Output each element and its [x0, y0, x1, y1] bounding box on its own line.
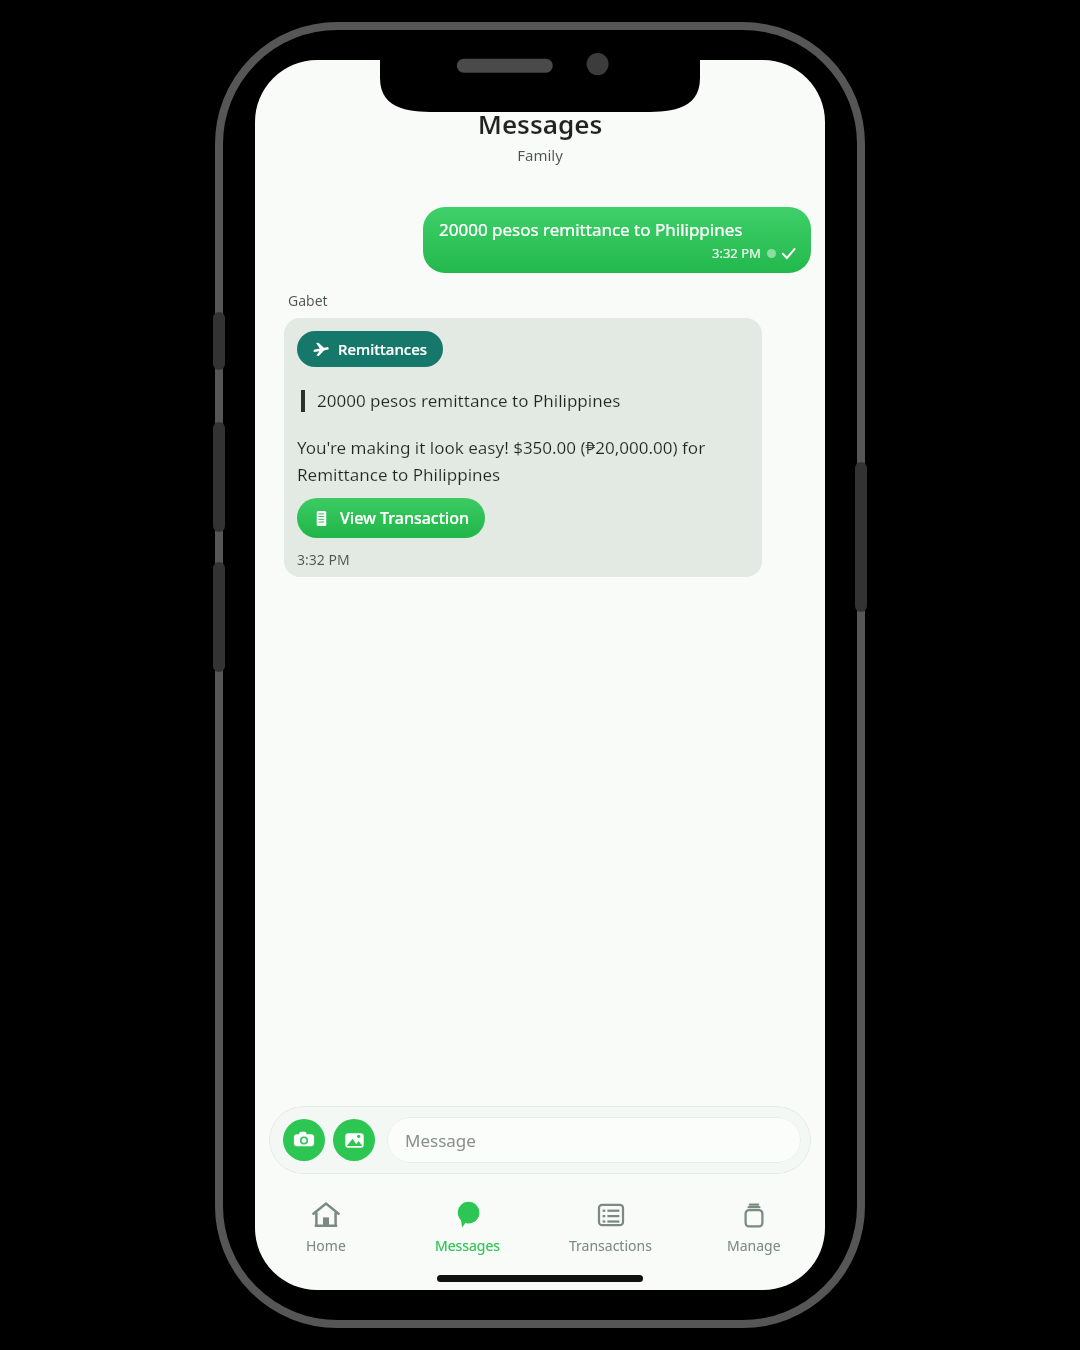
button[interactable]: Take photo [283, 1119, 325, 1161]
button[interactable]: Send image [333, 1119, 375, 1161]
staticText: 3:32 PM [712, 244, 761, 262]
staticText: Manage [727, 1236, 781, 1255]
staticText: Home [306, 1236, 346, 1255]
staticText: Transactions [569, 1236, 652, 1255]
staticText: Family [255, 145, 825, 165]
button[interactable]: Manage [682, 1188, 825, 1266]
button[interactable]: Remittances [297, 331, 443, 367]
staticText: 20000 pesos remittance to Philippines [439, 218, 743, 241]
button[interactable]: Message [387, 1117, 801, 1163]
staticText: Messages [435, 1236, 501, 1255]
button[interactable]: Home [255, 1188, 397, 1266]
staticText: 3:32 PM [297, 550, 350, 569]
staticText: Remittances [338, 339, 428, 359]
staticText: Messages [255, 106, 825, 141]
staticText: Gabet [288, 291, 328, 310]
button[interactable]: Messages [397, 1188, 539, 1266]
button[interactable]: 20000 pesos remittance to Philippines [423, 207, 811, 273]
staticText: You're making it look easy! $350.00 (₱20… [297, 436, 749, 486]
button[interactable]: View Transaction [297, 498, 485, 538]
staticText: 20000 pesos remittance to Philippines [317, 389, 621, 412]
staticText: View Transaction [340, 507, 469, 529]
button[interactable]: Remittances [284, 318, 762, 577]
button[interactable]: Transactions [539, 1188, 682, 1266]
staticText: Message [405, 1129, 476, 1152]
